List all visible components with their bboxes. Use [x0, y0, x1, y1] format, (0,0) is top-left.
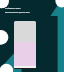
staticText: Category wise — [5, 7, 21, 10]
staticText: Breakdown black jan — [5, 10, 30, 13]
